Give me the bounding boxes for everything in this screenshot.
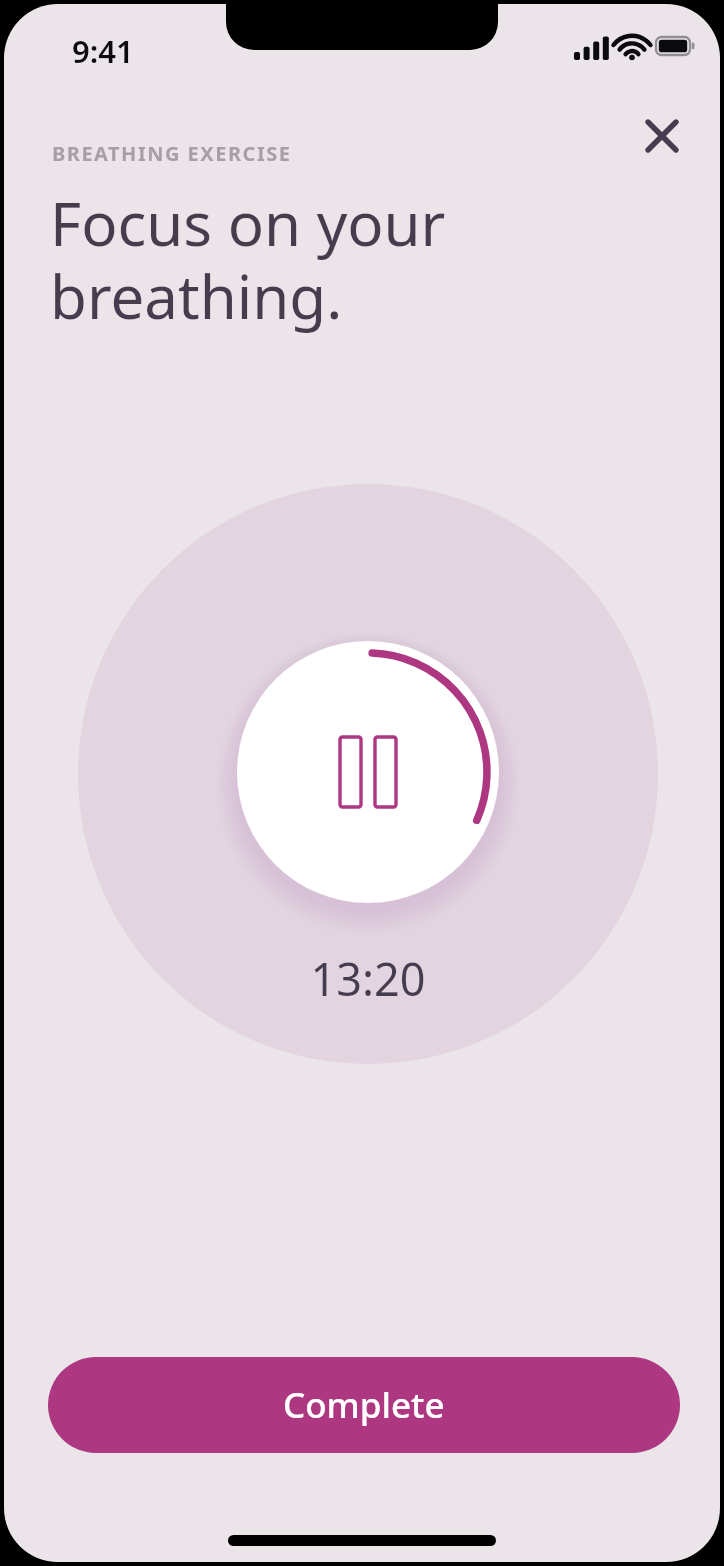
button[interactable]: Close: [630, 104, 694, 168]
button[interactable]: Complete: [48, 1357, 680, 1453]
button[interactable]: Pause breathing exercise: [222, 626, 514, 918]
staticText: BREATHING EXERCISE: [52, 140, 292, 167]
staticText: Complete: [283, 1381, 445, 1429]
staticText: 9:41: [72, 30, 134, 72]
staticText: 13:20: [78, 948, 658, 1009]
staticText: Focus on your breathing.: [50, 182, 446, 337]
